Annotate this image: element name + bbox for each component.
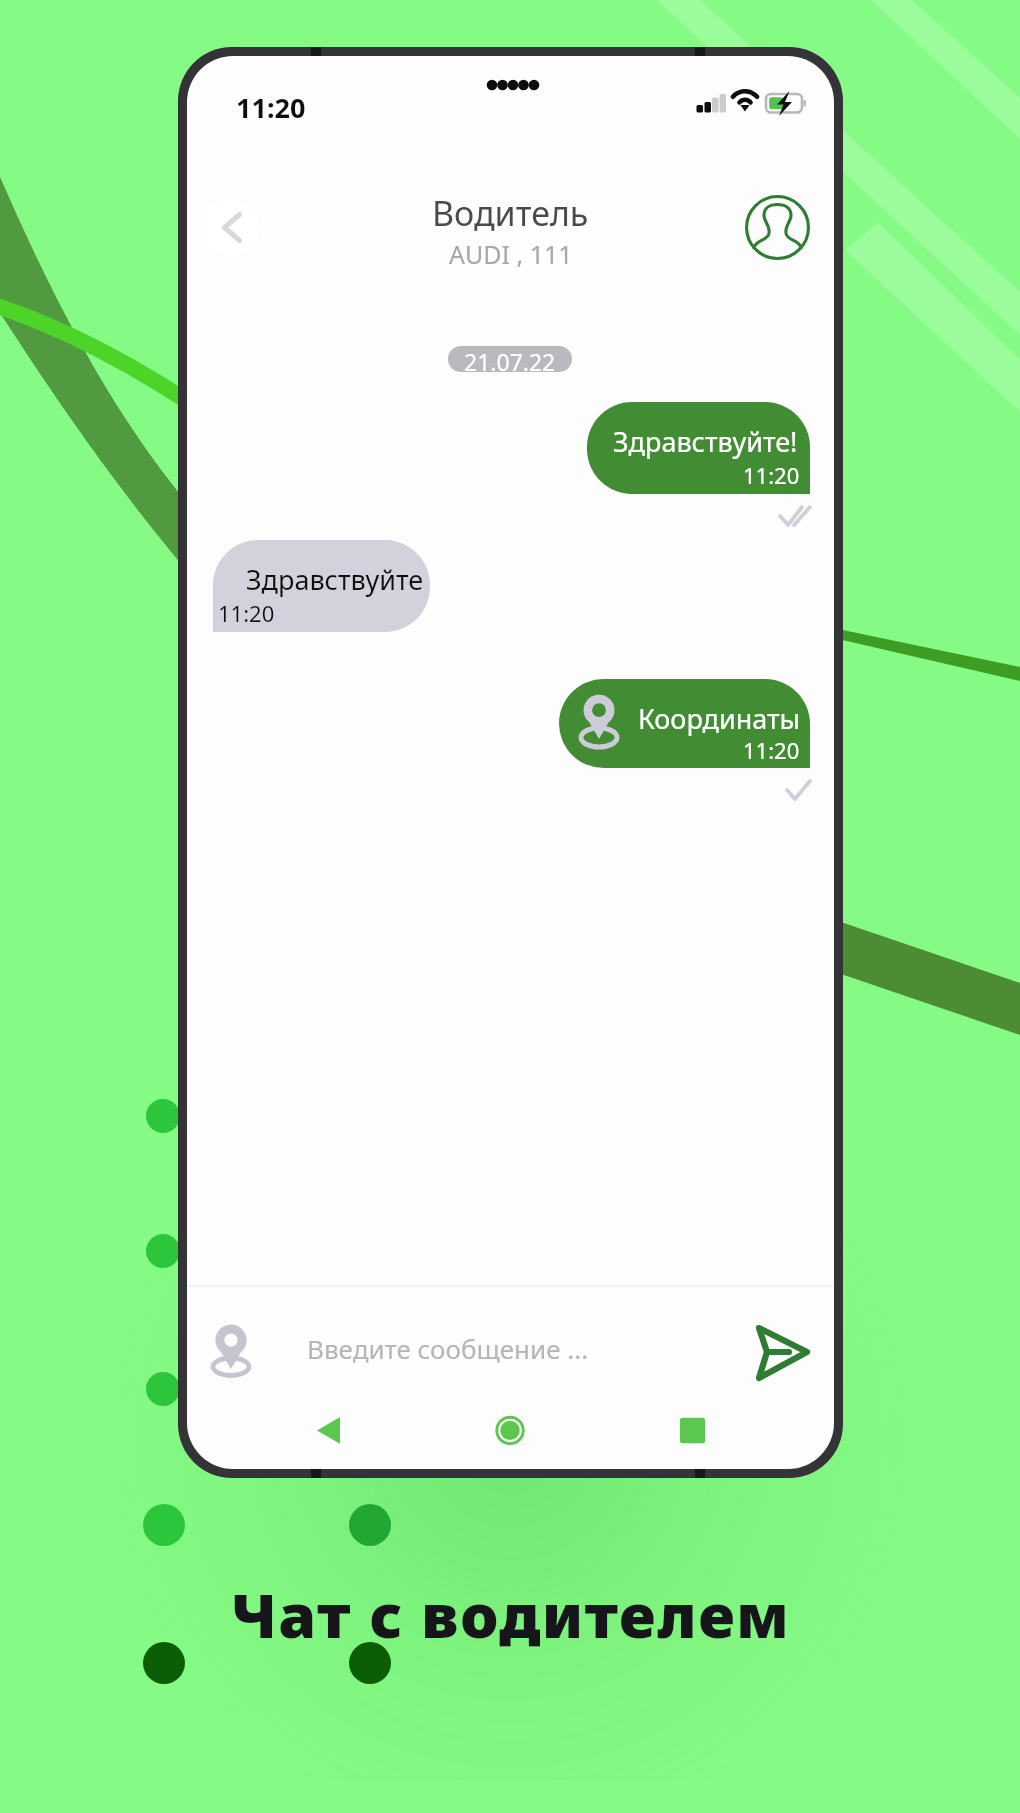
staticText: Координаты <box>638 700 801 737</box>
button[interactable]: Home <box>402 1392 618 1469</box>
button[interactable]: Координаты <box>559 679 810 768</box>
button[interactable]: Back <box>203 199 260 256</box>
button[interactable]: Здравствуйте <box>213 540 430 632</box>
staticText: 21.07.22 <box>464 346 556 372</box>
button[interactable]: Profile <box>745 195 810 260</box>
staticText: 11:20 <box>743 460 800 490</box>
staticText: Здравствуйте <box>246 561 424 598</box>
staticText: Чат с водителем <box>231 1573 790 1656</box>
staticText: Здравствуйте! <box>613 423 798 460</box>
staticText: Водитель <box>432 190 589 236</box>
button[interactable]: 21.07.22 <box>448 346 572 372</box>
staticText: 11:20 <box>218 598 275 628</box>
button[interactable]: Back <box>187 1392 402 1469</box>
button[interactable]: Attach location <box>211 1323 251 1379</box>
staticText: Введите сообщение ... <box>307 1331 589 1366</box>
button[interactable]: Recent apps <box>618 1392 834 1469</box>
button[interactable]: Send <box>752 1320 814 1382</box>
staticText: 11:20 <box>743 735 800 765</box>
button[interactable]: Здравствуйте! <box>587 402 810 494</box>
staticText: 11:20 <box>236 89 306 126</box>
staticText: AUDI , 111 <box>449 237 573 271</box>
